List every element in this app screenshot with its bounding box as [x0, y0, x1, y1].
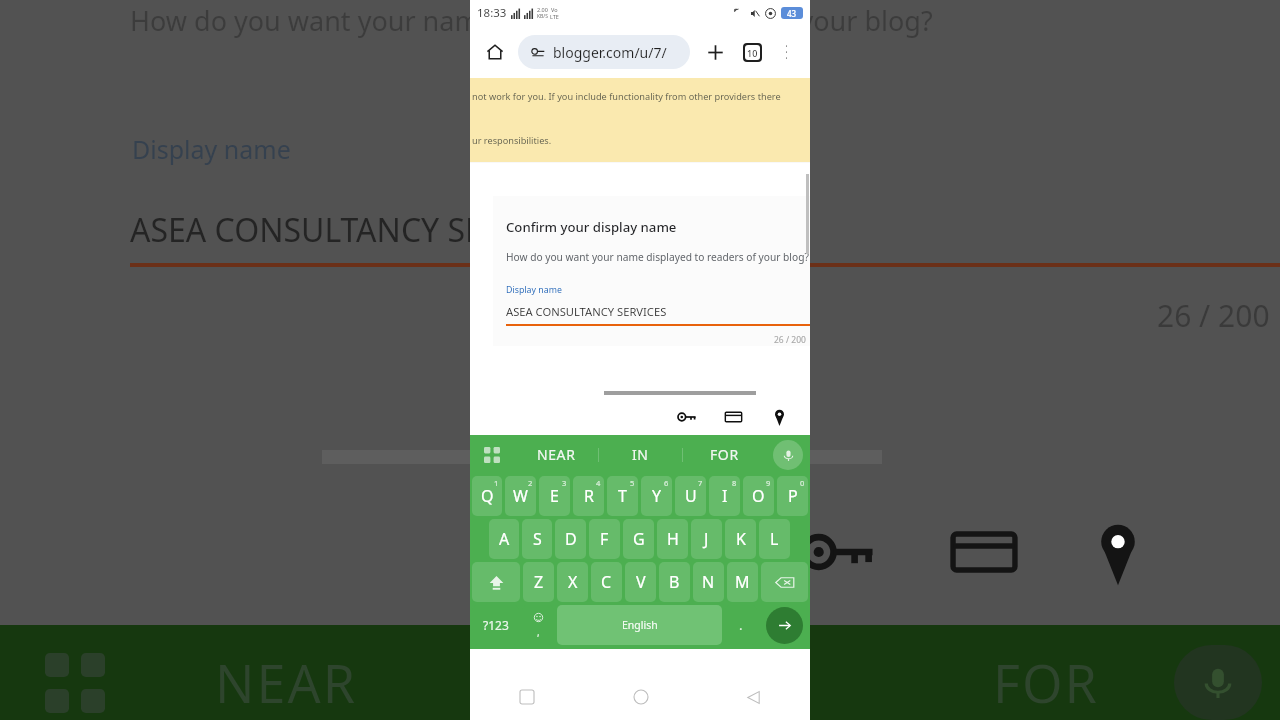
- staticText: 26 / 200: [774, 334, 806, 346]
- button[interactable]: T: [607, 476, 638, 516]
- staticText: ,: [537, 625, 540, 639]
- button[interactable]: R: [573, 476, 604, 516]
- staticText: K: [736, 528, 746, 550]
- staticText: Vo: [551, 6, 558, 13]
- button[interactable]: A: [489, 519, 519, 559]
- button[interactable]: Addresses: [758, 398, 800, 435]
- staticText: .: [739, 616, 743, 634]
- button[interactable]: J: [691, 519, 722, 559]
- staticText: P: [788, 485, 798, 507]
- button[interactable]: Backspace: [761, 562, 808, 602]
- button[interactable]: M: [727, 562, 758, 602]
- button[interactable]: Payment methods: [712, 398, 754, 435]
- staticText: C: [601, 571, 612, 593]
- staticText: M: [735, 571, 750, 593]
- staticText: 5: [630, 478, 635, 488]
- button[interactable]: FOR: [683, 435, 766, 474]
- button[interactable]: ?123: [472, 605, 519, 645]
- button[interactable]: N: [693, 562, 724, 602]
- button[interactable]: Z: [523, 562, 554, 602]
- staticText: NEAR: [215, 647, 358, 718]
- staticText: V: [636, 571, 646, 593]
- staticText: G: [633, 528, 645, 550]
- staticText: FOR: [710, 445, 739, 464]
- button[interactable]: F: [589, 519, 620, 559]
- button[interactable]: More options: [772, 38, 800, 66]
- staticText: T: [618, 485, 627, 507]
- button[interactable]: New tab: [700, 37, 730, 67]
- staticText: Z: [534, 571, 544, 593]
- staticText: R: [584, 485, 594, 507]
- button[interactable]: Keyboard apps: [470, 435, 514, 474]
- staticText: I: [722, 485, 728, 507]
- button[interactable]: Recent apps: [470, 674, 584, 720]
- staticText: Q: [481, 485, 494, 507]
- button[interactable]: Y: [641, 476, 672, 516]
- button[interactable]: S: [522, 519, 552, 559]
- button[interactable]: blogger.com/u/7/: [518, 35, 690, 69]
- button[interactable]: K: [725, 519, 756, 559]
- button[interactable]: NEAR: [514, 435, 598, 474]
- staticText: FOR: [993, 647, 1099, 718]
- button[interactable]: V: [625, 562, 656, 602]
- staticText: NEAR: [537, 445, 576, 464]
- staticText: U: [685, 485, 697, 507]
- button[interactable]: IN: [599, 435, 682, 474]
- button[interactable]: O: [743, 476, 774, 516]
- staticText: N: [702, 571, 715, 593]
- staticText: F: [600, 528, 609, 550]
- staticText: Display name: [506, 284, 562, 296]
- staticText: 10: [747, 47, 758, 59]
- button[interactable]: Enter: [760, 605, 808, 645]
- button[interactable]: D: [555, 519, 586, 559]
- button[interactable]: U: [675, 476, 706, 516]
- staticText: D: [565, 528, 577, 550]
- button[interactable]: Home: [480, 37, 510, 67]
- button[interactable]: H: [657, 519, 688, 559]
- staticText: Display name: [132, 132, 291, 166]
- button[interactable]: B: [659, 562, 690, 602]
- staticText: 2.00: [537, 6, 548, 13]
- button[interactable]: Q: [472, 476, 502, 516]
- button[interactable]: Back: [697, 674, 810, 720]
- button[interactable]: G: [623, 519, 654, 559]
- staticText: ASEA CONSULTANCY SERVICES: [506, 304, 667, 319]
- staticText: 8: [732, 478, 737, 488]
- button[interactable]: English: [557, 605, 722, 645]
- staticText: L: [770, 528, 779, 550]
- staticText: J: [704, 528, 709, 550]
- staticText: How do you want your name displayed to r…: [506, 250, 809, 264]
- button[interactable]: X: [557, 562, 588, 602]
- staticText: 3: [562, 478, 567, 488]
- button[interactable]: P: [777, 476, 808, 516]
- button[interactable]: Passwords: [666, 398, 708, 435]
- button[interactable]: Shift: [472, 562, 520, 602]
- staticText: 4: [596, 478, 601, 488]
- button[interactable]: Home: [584, 674, 697, 720]
- staticText: How do you want your name displayed to r…: [130, 2, 933, 39]
- button[interactable]: Tabs: [737, 37, 767, 67]
- staticText: Y: [652, 485, 662, 507]
- button[interactable]: L: [759, 519, 790, 559]
- staticText: 7: [698, 478, 703, 488]
- staticText: 18:33: [477, 5, 507, 21]
- staticText: LTE: [550, 13, 559, 20]
- staticText: 2: [528, 478, 533, 488]
- button[interactable]: Emoji and comma: [522, 605, 554, 645]
- button[interactable]: I: [709, 476, 740, 516]
- staticText: English: [622, 618, 658, 632]
- staticText: A: [499, 528, 510, 550]
- staticText: 9: [766, 478, 771, 488]
- staticText: Confirm your display name: [506, 218, 677, 236]
- button[interactable]: .: [725, 605, 757, 645]
- button[interactable]: Voice input: [766, 435, 810, 474]
- button[interactable]: E: [539, 476, 570, 516]
- staticText: H: [667, 528, 679, 550]
- button[interactable]: W: [505, 476, 536, 516]
- staticText: 1: [494, 478, 499, 488]
- staticText: O: [752, 485, 765, 507]
- button[interactable]: C: [591, 562, 622, 602]
- staticText: ASEA CONSULTANCY SERVICES: [130, 208, 589, 252]
- staticText: blogger.com/u/7/: [553, 43, 667, 62]
- staticText: ?123: [483, 617, 509, 633]
